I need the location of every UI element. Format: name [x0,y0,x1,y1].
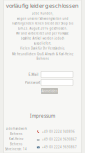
staticText: +49 (0) 2224 940896 [42,130,75,134]
staticText: E-Mail [28,72,38,77]
staticText: Behrens [10,142,22,146]
staticText: Vielen Dank für Ihr Verständnis. [20,47,65,50]
staticText: Behrens [36,57,48,60]
staticText: Anmelden [41,89,57,93]
staticText: bezahlte Artikel werden jedoch [20,37,64,40]
staticText: +49 (0) 2224 9690867 [42,145,77,149]
staticText: Impressum [30,113,55,119]
staticText: Liebe Kunden, [31,12,53,15]
staticText: Mit freundlichen Gruß Almuth & Karl-Hein… [12,52,73,56]
staticText: +49 (0) 2224 9690867 [42,138,77,141]
staticText: wegen unserer Schwierigkeiten und [16,17,68,20]
button[interactable]: Anmelden [41,88,58,94]
staticText: Behrens [10,132,22,136]
staticText: ausgeliefert. [33,42,51,45]
staticText: Schreinerstr. 14 [5,147,27,151]
staticText: Karl-Heinz [9,137,23,141]
staticText: Wir sind vorbereitet und per Vorkasse [16,32,69,35]
staticText: Passwort [25,80,40,85]
button[interactable]: +49 (0) 2224 9690867 [37,145,77,149]
staticText: nachfolgenden Ferien bleibt der Shop bis [12,22,73,25]
staticText: zum 23. August 2016 geschlossen. [17,27,67,30]
staticText: Lederhandwerk [5,127,26,130]
button[interactable]: Impressum [30,113,55,119]
button[interactable]: +49 (0) 2224 940896 [37,130,75,134]
staticText: vorläufig leider geschlossen [6,2,79,9]
button[interactable]: +49 (0) 2224 9690867 [37,138,77,141]
